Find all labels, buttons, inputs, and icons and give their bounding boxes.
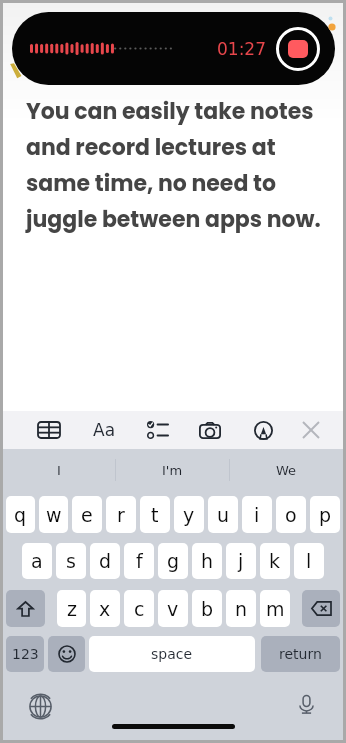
- staticText: c: [134, 598, 145, 620]
- button[interactable]: I'm: [116, 449, 229, 491]
- button[interactable]: t: [140, 496, 170, 533]
- staticText: a: [31, 550, 43, 572]
- button[interactable]: space: [89, 636, 255, 672]
- button[interactable]: return: [261, 636, 340, 672]
- button[interactable]: i: [242, 496, 272, 533]
- button[interactable]: Markup: [244, 411, 282, 449]
- staticText: You can easily take notes and record lec…: [26, 96, 326, 235]
- staticText: s: [66, 550, 76, 572]
- button[interactable]: x: [90, 590, 120, 627]
- button[interactable]: y: [174, 496, 204, 533]
- staticText: I: [57, 463, 61, 478]
- button[interactable]: s: [56, 543, 86, 579]
- staticText: n: [235, 598, 248, 620]
- staticText: We: [276, 463, 297, 478]
- button[interactable]: c: [124, 590, 154, 627]
- button[interactable]: o: [276, 496, 306, 533]
- button[interactable]: Dictate: [290, 688, 323, 721]
- button[interactable]: f: [124, 543, 154, 579]
- staticText: o: [285, 504, 297, 526]
- button[interactable]: Numbers: [6, 636, 44, 672]
- staticText: i: [254, 504, 260, 526]
- staticText: b: [201, 598, 214, 620]
- button[interactable]: z: [57, 590, 86, 627]
- staticText: j: [238, 550, 244, 572]
- staticText: r: [117, 504, 125, 526]
- button[interactable]: Close keyboard: [292, 411, 330, 449]
- staticText: t: [151, 504, 159, 526]
- staticText: I'm: [162, 463, 183, 478]
- button[interactable]: Checklist: [138, 411, 176, 449]
- staticText: z: [67, 598, 77, 620]
- button[interactable]: v: [158, 590, 188, 627]
- button[interactable]: Insert table: [30, 411, 68, 449]
- staticText: w: [46, 504, 62, 526]
- button[interactable]: m: [260, 590, 290, 627]
- staticText: l: [306, 550, 312, 572]
- button[interactable]: r: [106, 496, 136, 533]
- staticText: h: [201, 550, 214, 572]
- staticText: f: [136, 550, 143, 572]
- button[interactable]: Change keyboard: [24, 690, 57, 723]
- staticText: v: [167, 598, 179, 620]
- button[interactable]: a: [22, 543, 52, 579]
- button[interactable]: g: [158, 543, 188, 579]
- button[interactable]: Backspace: [302, 590, 340, 627]
- staticText: k: [269, 550, 281, 572]
- button[interactable]: k: [260, 543, 290, 579]
- staticText: x: [99, 598, 111, 620]
- button[interactable]: u: [208, 496, 238, 533]
- button[interactable]: e: [72, 496, 102, 533]
- button[interactable]: I: [3, 449, 115, 491]
- staticText: u: [217, 504, 230, 526]
- staticText: space: [151, 646, 193, 662]
- button[interactable]: b: [192, 590, 222, 627]
- button[interactable]: 01:27: [12, 12, 335, 85]
- button[interactable]: w: [39, 496, 68, 533]
- staticText: m: [266, 598, 285, 620]
- button[interactable]: Stop recording: [276, 27, 320, 71]
- staticText: d: [99, 550, 112, 572]
- staticText: p: [319, 504, 332, 526]
- button[interactable]: n: [226, 590, 256, 627]
- button[interactable]: d: [90, 543, 120, 579]
- staticText: Aa: [93, 420, 116, 440]
- staticText: y: [183, 504, 195, 526]
- staticText: return: [279, 646, 322, 662]
- staticText: 01:27: [217, 39, 266, 59]
- button[interactable]: l: [294, 543, 324, 579]
- button[interactable]: Camera: [191, 411, 229, 449]
- button[interactable]: Text format: [85, 411, 123, 449]
- button[interactable]: Emoji: [48, 636, 85, 672]
- staticText: e: [81, 504, 93, 526]
- staticText: 123: [12, 646, 39, 662]
- staticText: q: [14, 504, 27, 526]
- button[interactable]: p: [310, 496, 340, 533]
- button[interactable]: q: [6, 496, 35, 533]
- staticText: g: [167, 550, 180, 572]
- button[interactable]: Shift: [6, 590, 45, 627]
- button[interactable]: h: [192, 543, 222, 579]
- button[interactable]: We: [230, 449, 343, 491]
- button[interactable]: j: [226, 543, 256, 579]
